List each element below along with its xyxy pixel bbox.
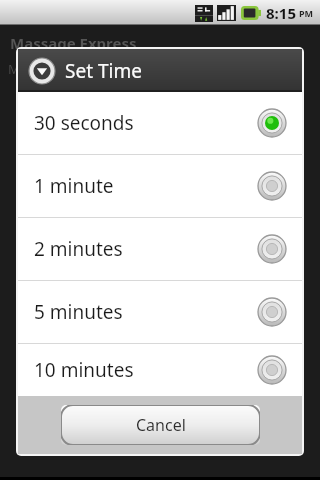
- button[interactable]: 2 minutes: [18, 218, 302, 280]
- staticText: Set Time: [65, 58, 142, 84]
- button[interactable]: 5 minutes: [18, 281, 302, 343]
- staticText: 1 minute: [34, 173, 258, 199]
- button[interactable]: 1 minute: [18, 155, 302, 217]
- staticText: 30 seconds: [34, 110, 258, 136]
- staticText: Cancel: [136, 414, 186, 436]
- staticText: Massage Express: [10, 33, 137, 53]
- staticText: 5 minutes: [34, 299, 258, 325]
- staticText: 2 minutes: [34, 236, 258, 262]
- staticText: M: [8, 60, 20, 78]
- button[interactable]: 10 minutes: [18, 344, 302, 396]
- staticText: 8:15: [266, 3, 296, 23]
- button[interactable]: 30 seconds: [18, 92, 302, 154]
- staticText: About: [20, 410, 77, 437]
- staticText: PM: [299, 7, 314, 19]
- button[interactable]: Cancel: [61, 405, 260, 445]
- staticText: 10 minutes: [34, 357, 258, 383]
